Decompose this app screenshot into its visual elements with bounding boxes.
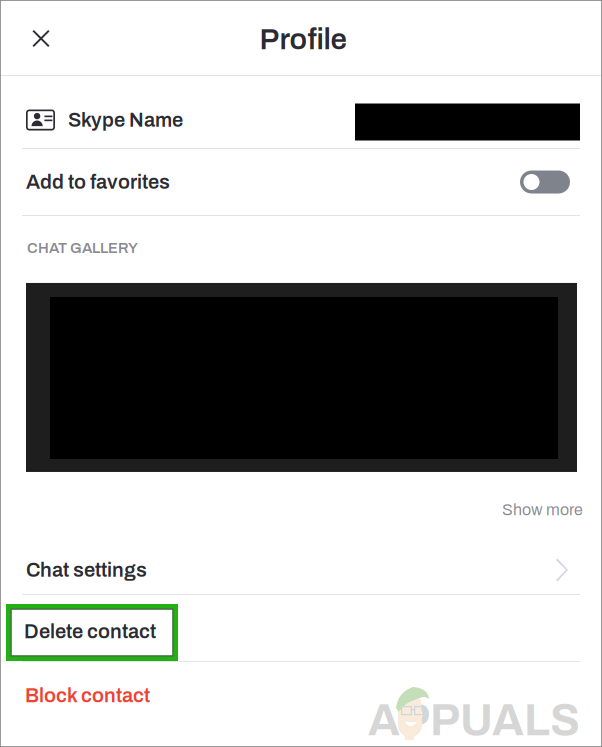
button[interactable]: Show more	[0, 472, 602, 540]
button[interactable]: Delete contact	[0, 595, 602, 661]
staticText: Show more	[502, 501, 583, 519]
staticText: Block contact	[25, 685, 150, 706]
button[interactable]: Close	[17, 12, 65, 62]
button[interactable]: Chat settings	[0, 540, 602, 594]
staticText: Profile	[259, 23, 346, 55]
staticText: APPUALS	[368, 697, 580, 744]
staticText: Skype Name	[68, 109, 183, 131]
button[interactable]: Add to favorites	[0, 149, 602, 215]
staticText: CHAT GALLERY	[27, 240, 138, 256]
staticText: Add to favorites	[26, 171, 170, 193]
staticText: Chat settings	[26, 559, 147, 581]
button[interactable]: Block contact	[0, 662, 602, 722]
staticText: Delete contact	[24, 621, 156, 642]
